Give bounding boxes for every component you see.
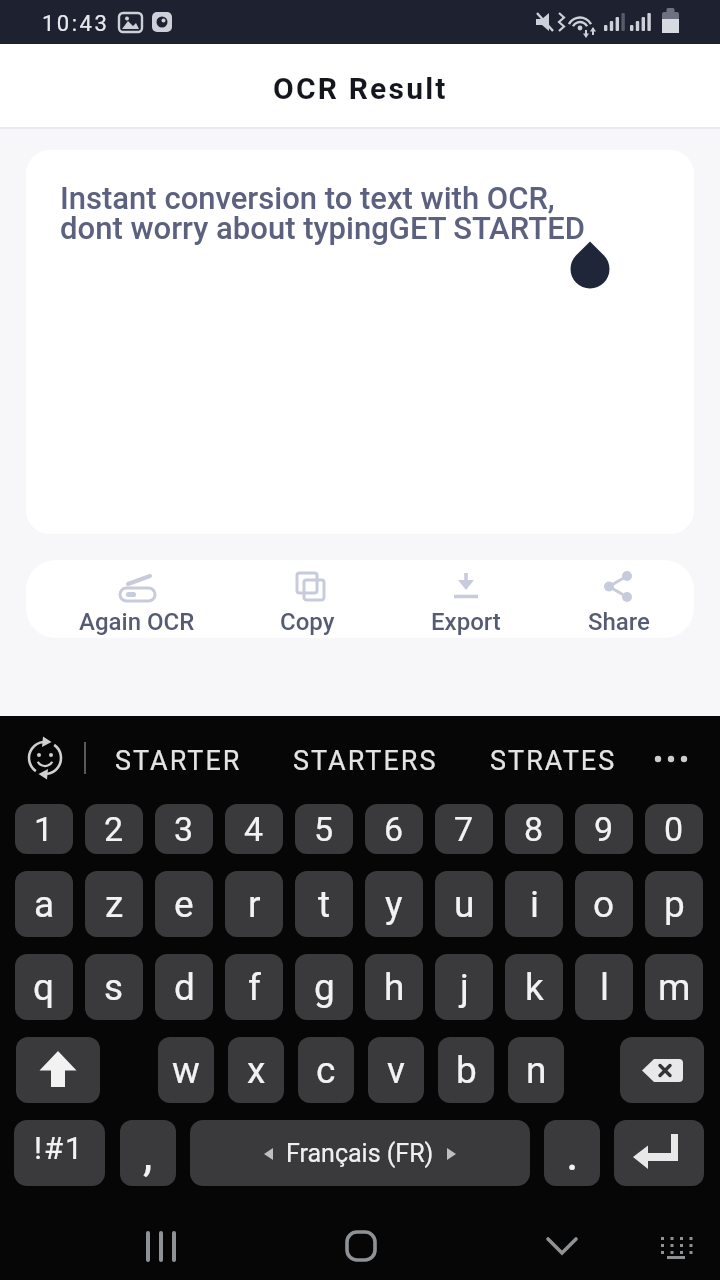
staticText: ,: [143, 1125, 153, 1181]
staticText: OCR Result: [273, 71, 448, 106]
button[interactable]: i: [505, 871, 563, 937]
button[interactable]: u: [435, 871, 493, 937]
staticText: STRATES: [490, 745, 617, 777]
staticText: Français (FR): [286, 1139, 434, 1168]
button[interactable]: 2: [85, 804, 143, 854]
button[interactable]: 6: [365, 804, 423, 854]
staticText: 4: [244, 809, 264, 849]
staticText: u: [454, 883, 475, 926]
staticText: h: [384, 966, 405, 1009]
staticText: x: [247, 1049, 266, 1092]
staticText: 7: [454, 809, 474, 849]
staticText: w: [172, 1049, 200, 1092]
button[interactable]: g: [295, 954, 353, 1020]
staticText: Share: [588, 608, 650, 636]
button[interactable]: n: [508, 1037, 564, 1103]
button[interactable]: 7: [435, 804, 493, 854]
button[interactable]: 5: [295, 804, 353, 854]
staticText: 1: [34, 809, 54, 849]
staticText: 5: [314, 809, 334, 849]
staticText: q: [33, 966, 55, 1009]
button[interactable]: ,: [120, 1120, 176, 1186]
staticText: Again OCR: [79, 608, 195, 636]
button[interactable]: j: [435, 954, 493, 1020]
button[interactable]: [614, 1120, 704, 1186]
button[interactable]: 3: [155, 804, 213, 854]
button[interactable]: 0: [645, 804, 703, 854]
button[interactable]: 9: [575, 804, 633, 854]
staticText: e: [174, 883, 194, 926]
button[interactable]: e: [155, 871, 213, 937]
button[interactable]: Français (FR): [190, 1120, 530, 1186]
button[interactable]: .: [544, 1120, 600, 1186]
button[interactable]: a: [15, 871, 73, 937]
staticText: i: [530, 883, 539, 926]
staticText: m: [658, 966, 691, 1009]
staticText: n: [526, 1049, 547, 1092]
button[interactable]: v: [368, 1037, 424, 1103]
staticText: .: [566, 1125, 579, 1181]
button[interactable]: s: [85, 954, 143, 1020]
staticText: g: [314, 966, 335, 1009]
button[interactable]: q: [15, 954, 73, 1020]
button[interactable]: Copy: [227, 560, 387, 638]
button[interactable]: p: [645, 871, 703, 937]
staticText: o: [593, 883, 615, 926]
staticText: STARTER: [115, 745, 242, 777]
staticText: p: [664, 883, 685, 926]
button[interactable]: x: [228, 1037, 284, 1103]
button[interactable]: t: [295, 871, 353, 937]
button[interactable]: 4: [225, 804, 283, 854]
staticText: 2: [104, 809, 124, 849]
button[interactable]: [16, 1037, 100, 1103]
button[interactable]: !#1: [14, 1120, 105, 1186]
button[interactable]: [130, 1216, 190, 1276]
staticText: 10:43: [42, 11, 110, 37]
staticText: k: [525, 966, 544, 1009]
button[interactable]: y: [365, 871, 423, 937]
button[interactable]: r: [225, 871, 283, 937]
staticText: j: [460, 966, 469, 1009]
button[interactable]: STARTERS: [255, 739, 475, 783]
button[interactable]: 8: [505, 804, 563, 854]
staticText: l: [600, 966, 609, 1009]
button[interactable]: Share: [539, 560, 694, 638]
button[interactable]: STRATES: [443, 739, 663, 783]
staticText: 0: [664, 809, 684, 849]
staticText: s: [104, 966, 124, 1009]
staticText: a: [34, 883, 55, 926]
button[interactable]: m: [645, 954, 703, 1020]
staticText: c: [316, 1049, 336, 1092]
staticText: STARTERS: [293, 745, 438, 777]
button[interactable]: [532, 1216, 592, 1276]
button[interactable]: Instant conversion to text with OCR, don…: [26, 150, 694, 534]
button[interactable]: [643, 1216, 703, 1276]
button[interactable]: l: [575, 954, 633, 1020]
button[interactable]: k: [505, 954, 563, 1020]
staticText: Copy: [280, 608, 335, 636]
button[interactable]: w: [158, 1037, 214, 1103]
staticText: Export: [431, 608, 501, 636]
staticText: y: [385, 883, 403, 926]
staticText: b: [456, 1049, 477, 1092]
staticText: !#1: [34, 1130, 85, 1166]
button[interactable]: Again OCR: [57, 560, 217, 638]
staticText: 6: [384, 809, 404, 849]
button[interactable]: [331, 1216, 391, 1276]
button[interactable]: z: [85, 871, 143, 937]
button[interactable]: d: [155, 954, 213, 1020]
button[interactable]: 1: [15, 804, 73, 854]
button[interactable]: Export: [386, 560, 546, 638]
button[interactable]: h: [365, 954, 423, 1020]
staticText: d: [174, 966, 195, 1009]
button[interactable]: c: [298, 1037, 354, 1103]
staticText: t: [318, 883, 331, 926]
button[interactable]: [620, 1037, 704, 1103]
staticText: v: [387, 1049, 405, 1092]
button[interactable]: o: [575, 871, 633, 937]
button[interactable]: b: [438, 1037, 494, 1103]
staticText: 9: [594, 809, 614, 849]
staticText: 8: [524, 809, 544, 849]
button[interactable]: STARTER: [68, 739, 288, 783]
button[interactable]: f: [225, 954, 283, 1020]
